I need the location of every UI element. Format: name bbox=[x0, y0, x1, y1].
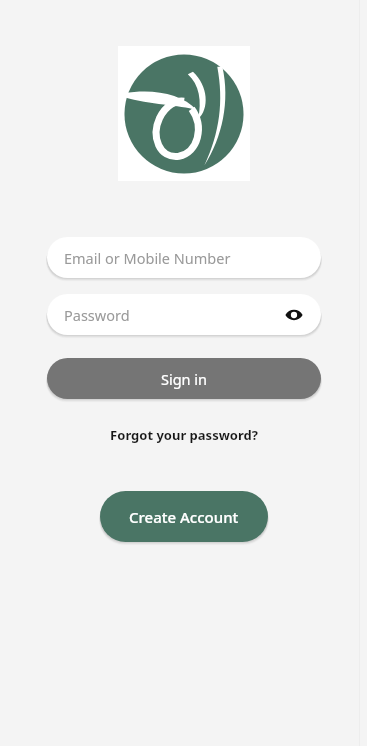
staticText: Password bbox=[64, 305, 281, 325]
button[interactable]: Show password bbox=[281, 302, 307, 328]
staticText: Create Account bbox=[129, 507, 239, 527]
button[interactable]: Create Account bbox=[100, 491, 268, 546]
staticText: Sign in bbox=[161, 369, 208, 389]
button[interactable]: Forgot your password? bbox=[102, 424, 266, 446]
button[interactable]: Sign in bbox=[47, 358, 321, 403]
staticText: Forgot your password? bbox=[110, 426, 258, 444]
staticText: Email or Mobile Number bbox=[64, 248, 231, 268]
